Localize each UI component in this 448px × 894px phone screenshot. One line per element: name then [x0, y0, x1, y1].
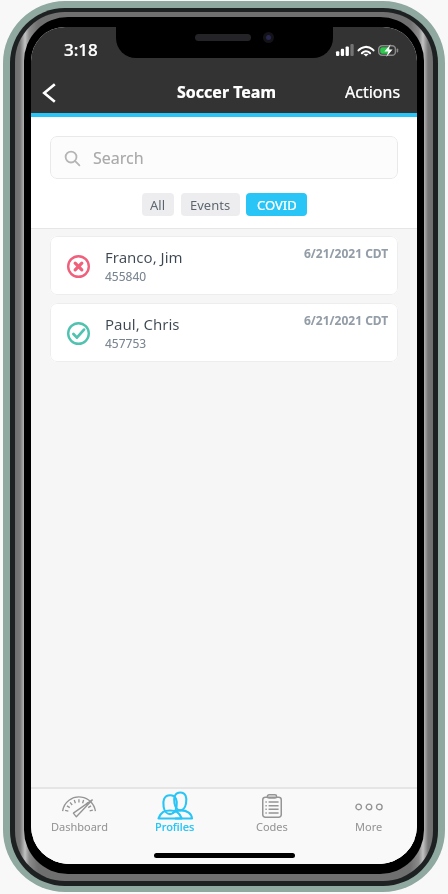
staticText: Search [93, 147, 144, 169]
staticText: Paul, Chris [105, 314, 180, 334]
staticText: 3:18 [64, 38, 98, 61]
staticText: 6/21/2021 CDT [304, 245, 389, 261]
staticText: Soccer Team [177, 81, 277, 103]
button[interactable]: All [142, 193, 174, 216]
staticText: All [150, 196, 166, 214]
staticText: Franco, Jim [105, 247, 183, 267]
button[interactable]: Back [31, 62, 73, 113]
button[interactable]: Codes [223, 789, 320, 840]
staticText: 6/21/2021 CDT [304, 312, 389, 328]
staticText: Dashboard [51, 819, 108, 834]
button[interactable]: Profiles [127, 789, 223, 840]
staticText: COVID [257, 196, 297, 214]
button[interactable]: More [320, 789, 417, 840]
staticText: Codes [256, 819, 288, 834]
button[interactable]: Actions [325, 62, 417, 113]
button[interactable]: COVID [246, 193, 307, 216]
button[interactable]: Paul, Chris [50, 303, 398, 362]
staticText: 457753 [105, 335, 147, 351]
staticText: Events [190, 196, 231, 214]
button[interactable]: Search [50, 136, 398, 179]
staticText: 455840 [105, 268, 147, 284]
staticText: More [355, 819, 383, 834]
staticText: Actions [345, 81, 401, 103]
staticText: Profiles [155, 819, 195, 834]
button[interactable]: Franco, Jim [50, 236, 398, 295]
button[interactable]: Events [181, 193, 240, 216]
button[interactable]: Dashboard [31, 789, 127, 840]
